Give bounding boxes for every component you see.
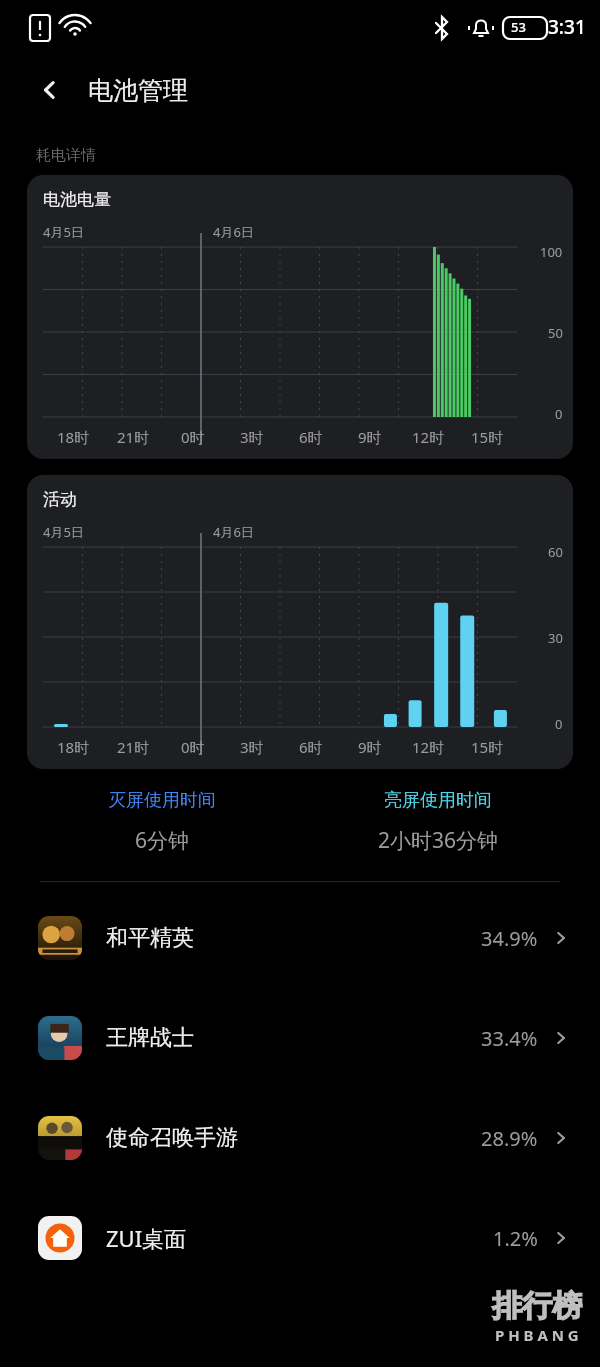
staticText: 3时 — [240, 427, 264, 447]
staticText: 1.2% — [493, 1225, 538, 1252]
staticText: 活动 — [43, 489, 77, 510]
button[interactable]: Back — [28, 68, 72, 112]
staticText: 电池管理 — [88, 75, 188, 106]
staticText: 2小时36分钟 — [378, 826, 499, 855]
staticText: 6时 — [299, 427, 323, 447]
staticText: 3时 — [240, 737, 264, 757]
staticText: 28.9% — [481, 1125, 538, 1152]
button[interactable]: 活动 — [27, 475, 573, 769]
staticText: 9时 — [358, 737, 382, 757]
staticText: 和平精英 — [106, 924, 194, 952]
staticText: 18时 — [57, 737, 90, 757]
button[interactable]: ZUI桌面 — [0, 1188, 600, 1288]
staticText: 0时 — [181, 737, 205, 757]
staticText: 王牌战士 — [106, 1024, 194, 1052]
staticText: 亮屏使用时间 — [384, 789, 492, 812]
button[interactable]: 和平精英 — [0, 888, 600, 988]
staticText: 0 — [555, 715, 563, 733]
staticText: 21时 — [117, 427, 150, 447]
staticText: 60 — [548, 543, 563, 561]
staticText: 33.4% — [481, 1025, 538, 1052]
staticText: 9时 — [358, 427, 382, 447]
button[interactable]: 王牌战士 — [0, 988, 600, 1088]
staticText: 使命召唤手游 — [106, 1124, 238, 1152]
button[interactable]: 使命召唤手游 — [0, 1088, 600, 1188]
staticText: 3:31 — [548, 14, 586, 40]
staticText: 15时 — [471, 737, 504, 757]
staticText: 排行榜 — [492, 1287, 582, 1325]
button[interactable]: 电池电量 — [27, 175, 573, 459]
staticText: 18时 — [57, 427, 90, 447]
staticText: 6时 — [299, 737, 323, 757]
staticText: ZUI桌面 — [106, 1223, 187, 1253]
staticText: 灭屏使用时间 — [108, 789, 216, 812]
staticText: 21时 — [117, 737, 150, 757]
staticText: 12时 — [412, 737, 445, 757]
staticText: 100 — [540, 243, 563, 261]
staticText: 34.9% — [481, 925, 538, 952]
staticText: 4月5日 — [43, 223, 84, 241]
staticText: 15时 — [471, 427, 504, 447]
staticText: 0时 — [181, 427, 205, 447]
staticText: 12时 — [412, 427, 445, 447]
staticText: 0 — [555, 405, 563, 423]
staticText: 耗电详情 — [36, 146, 96, 165]
staticText: 6分钟 — [135, 826, 190, 855]
staticText: 53 — [511, 18, 526, 36]
staticText: 电池电量 — [43, 189, 111, 210]
staticText: 50 — [548, 324, 563, 342]
staticText: 4月5日 — [43, 523, 84, 541]
staticText: P H B A N G — [495, 1325, 579, 1345]
staticText: 4月6日 — [213, 223, 254, 241]
staticText: 30 — [548, 629, 563, 647]
staticText: 4月6日 — [213, 523, 254, 541]
